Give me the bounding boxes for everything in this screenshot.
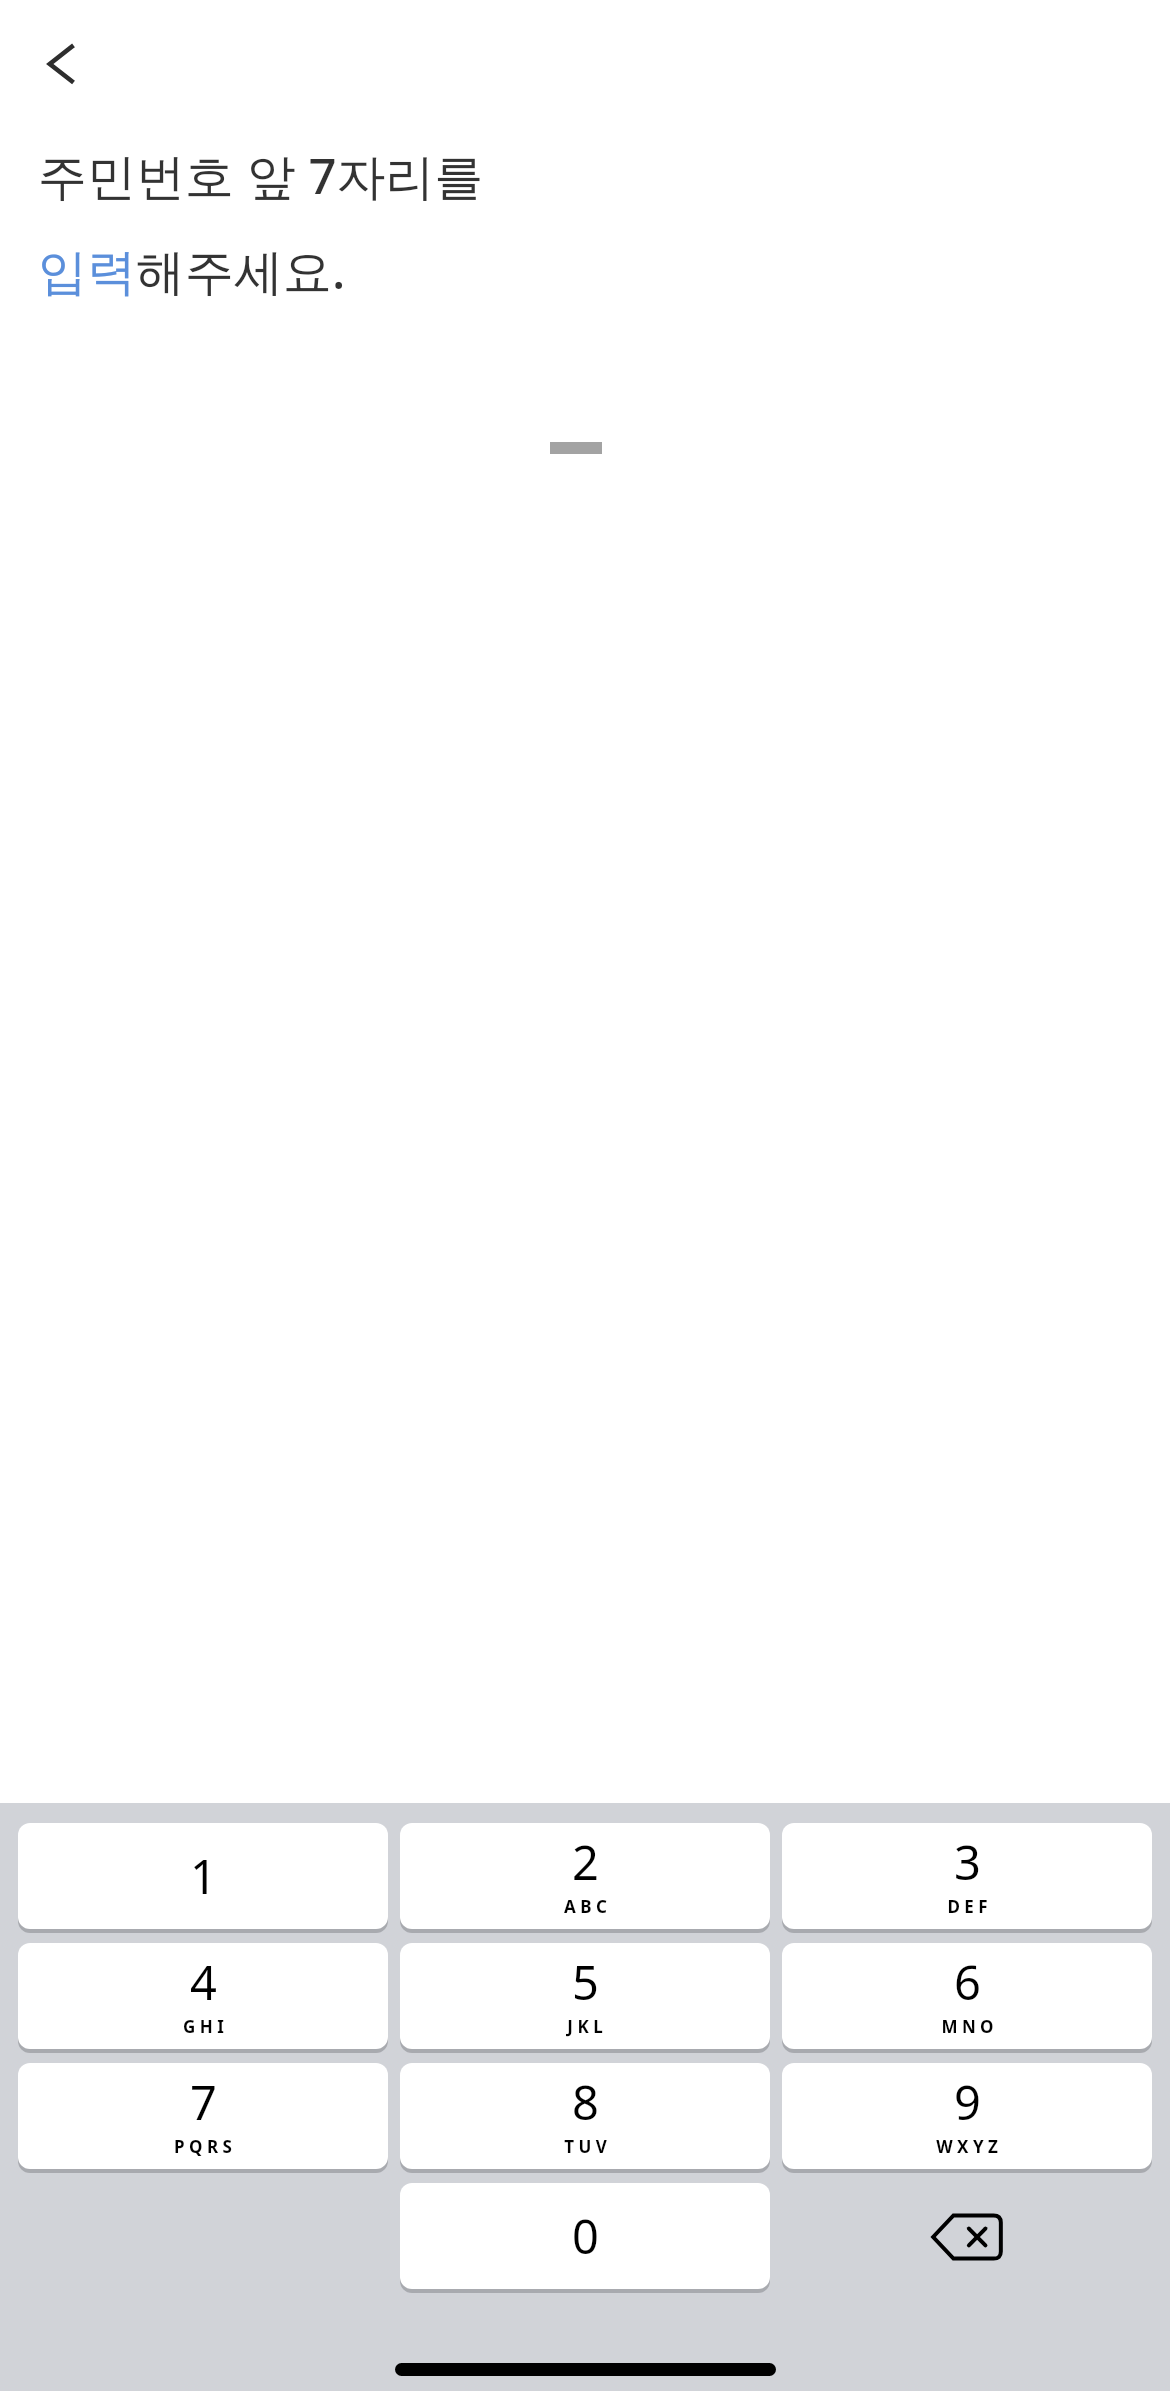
staticText: J K L (567, 2015, 603, 2038)
staticText: 3 (954, 1830, 981, 1894)
staticText: 5 (572, 1950, 599, 2014)
staticText: M N O (941, 2015, 994, 2038)
button[interactable]: 8 (400, 2063, 770, 2171)
staticText: 2 (572, 1830, 599, 1894)
button[interactable]: 3 (782, 1823, 1152, 1931)
staticText: T U V (564, 2135, 607, 2158)
button[interactable]: 0 (400, 2183, 770, 2291)
button[interactable]: 6 (782, 1943, 1152, 2051)
button[interactable]: 1 (18, 1823, 388, 1931)
staticText: 8 (572, 2070, 599, 2134)
staticText: 입력해주세요. (38, 237, 346, 304)
button[interactable]: 5 (400, 1943, 770, 2051)
staticText: 9 (954, 2070, 981, 2134)
button[interactable]: 4 (18, 1943, 388, 2051)
button[interactable]: Backspace (782, 2183, 1152, 2291)
button[interactable] (0, 424, 1170, 484)
staticText: 7 (190, 2070, 217, 2134)
staticText: 6 (954, 1950, 981, 2014)
button[interactable]: 7 (18, 2063, 388, 2171)
staticText: 0 (572, 2204, 599, 2268)
staticText: 주민번호 앞 7자리를 (38, 142, 484, 209)
staticText: G H I (183, 2015, 224, 2038)
button[interactable]: 9 (782, 2063, 1152, 2171)
staticText: W X Y Z (936, 2135, 998, 2158)
button[interactable]: Back (22, 16, 110, 104)
staticText: A B C (564, 1895, 607, 1918)
staticText: 1 (190, 1844, 217, 1908)
button[interactable]: 2 (400, 1823, 770, 1931)
staticText: P Q R S (174, 2135, 232, 2158)
staticText: 4 (190, 1950, 217, 2014)
staticText: D E F (947, 1895, 988, 1918)
